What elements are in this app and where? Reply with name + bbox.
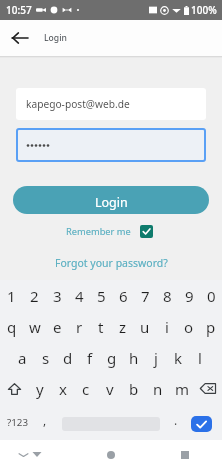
button[interactable]: n xyxy=(146,373,170,404)
button[interactable]: t xyxy=(90,311,112,342)
staticText: kapego-post@web.de xyxy=(26,97,130,111)
button[interactable]: Forgot your password? xyxy=(52,254,171,272)
button[interactable]: Back xyxy=(5,20,34,56)
staticText: ?123 xyxy=(7,416,29,429)
button[interactable]: 1 xyxy=(0,280,23,311)
button[interactable]: z xyxy=(112,311,134,342)
button[interactable]: Home xyxy=(74,440,148,469)
button[interactable]: x xyxy=(51,373,74,404)
staticText: q xyxy=(7,317,17,337)
button[interactable]: 7 xyxy=(134,280,156,311)
button[interactable]: Remember me xyxy=(66,223,153,239)
button[interactable]: Hide keyboard xyxy=(0,440,46,469)
button[interactable]: 0 xyxy=(200,280,222,311)
button[interactable]: h xyxy=(123,342,145,373)
staticText: Remember me xyxy=(66,225,131,238)
button[interactable]: . xyxy=(166,404,186,435)
staticText: r xyxy=(76,317,83,337)
staticText: n xyxy=(153,379,163,399)
button[interactable]: Shift xyxy=(0,373,28,404)
button[interactable]: q xyxy=(0,311,23,342)
staticText: x xyxy=(59,379,67,399)
button[interactable]: v xyxy=(98,373,122,404)
staticText: g xyxy=(107,348,117,368)
staticText: e xyxy=(53,317,62,337)
staticText: . xyxy=(174,412,178,428)
button[interactable]: j xyxy=(145,342,167,373)
button[interactable]: Backspace xyxy=(194,373,222,404)
button[interactable]: i xyxy=(156,311,178,342)
staticText: 6 xyxy=(119,286,128,306)
button[interactable]: r xyxy=(68,311,90,342)
staticText: h xyxy=(129,348,139,368)
button[interactable]: , xyxy=(35,404,55,435)
staticText: , xyxy=(43,412,47,428)
staticText: o xyxy=(184,317,194,337)
staticText: s xyxy=(42,348,50,368)
staticText: 100% xyxy=(191,3,217,17)
button[interactable]: d xyxy=(57,342,79,373)
button[interactable]: Back xyxy=(0,440,74,469)
button[interactable]: 2 xyxy=(23,280,46,311)
button[interactable]: m xyxy=(170,373,194,404)
staticText: Login xyxy=(95,194,128,211)
staticText: v xyxy=(106,379,114,399)
staticText: Login xyxy=(44,32,67,44)
button[interactable]: b xyxy=(122,373,146,404)
staticText: 8 xyxy=(163,286,172,306)
staticText: l xyxy=(198,348,202,368)
staticText: m xyxy=(175,379,190,399)
button[interactable]: c xyxy=(74,373,98,404)
staticText: 7 xyxy=(141,286,150,306)
staticText: 3 xyxy=(53,286,62,306)
button[interactable]: f xyxy=(79,342,101,373)
button[interactable]: e xyxy=(46,311,68,342)
button[interactable]: 9 xyxy=(178,280,200,311)
staticText: t xyxy=(98,317,104,337)
staticText: y xyxy=(36,379,44,399)
button[interactable]: w xyxy=(23,311,46,342)
staticText: c xyxy=(82,379,90,399)
button[interactable]: ?123 xyxy=(0,404,35,435)
button[interactable]: p xyxy=(200,311,222,342)
button[interactable]: 4 xyxy=(68,280,90,311)
staticText: f xyxy=(87,348,93,368)
button[interactable]: Enter xyxy=(191,416,212,432)
button[interactable]: 3 xyxy=(46,280,68,311)
staticText: d xyxy=(63,348,73,368)
button[interactable]: 8 xyxy=(156,280,178,311)
button[interactable]: s xyxy=(34,342,57,373)
button[interactable]: a xyxy=(11,342,34,373)
staticText: i xyxy=(165,317,169,337)
staticText: 0 xyxy=(207,286,216,306)
button[interactable]: Login xyxy=(13,186,209,214)
staticText: 10:57 xyxy=(6,3,32,17)
button[interactable]: Recents xyxy=(148,440,222,469)
button[interactable]: g xyxy=(101,342,123,373)
staticText: 2 xyxy=(30,286,39,306)
staticText: 9 xyxy=(185,286,194,306)
staticText: z xyxy=(119,317,127,337)
button[interactable]: 6 xyxy=(112,280,134,311)
staticText: a xyxy=(18,348,27,368)
staticText: p xyxy=(206,317,216,337)
staticText: w xyxy=(29,317,41,337)
staticText: 4 xyxy=(75,286,84,306)
button[interactable]: l xyxy=(189,342,211,373)
button[interactable]: y xyxy=(28,373,51,404)
staticText: u xyxy=(140,317,150,337)
staticText: 5 xyxy=(97,286,106,306)
staticText: j xyxy=(154,348,158,368)
button[interactable]: u xyxy=(134,311,156,342)
button[interactable]: kapego-post@web.de xyxy=(16,88,206,120)
button[interactable] xyxy=(16,128,206,162)
staticText: 1 xyxy=(7,286,16,306)
button[interactable]: k xyxy=(167,342,189,373)
button[interactable]: 5 xyxy=(90,280,112,311)
staticText: k xyxy=(174,348,183,368)
button[interactable]: o xyxy=(178,311,200,342)
staticText: b xyxy=(129,379,139,399)
